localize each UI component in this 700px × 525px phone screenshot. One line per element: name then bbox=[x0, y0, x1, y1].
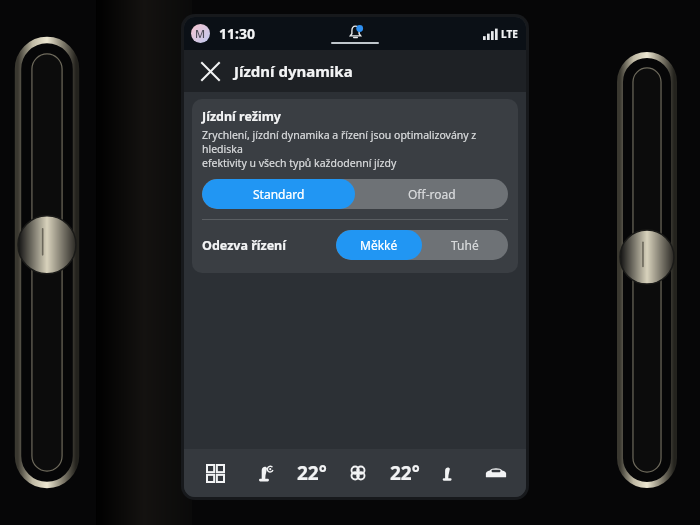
button[interactable]: 22° bbox=[390, 460, 420, 486]
staticText: Tuhé bbox=[451, 237, 479, 253]
staticText: Standard bbox=[253, 186, 305, 202]
staticText: Off-road bbox=[408, 186, 456, 202]
staticText: LTE bbox=[501, 27, 518, 41]
staticText: 11:30 bbox=[219, 24, 255, 43]
staticText: Měkké bbox=[360, 237, 398, 253]
staticText: efektivity u všech typů každodenní jízdy bbox=[202, 156, 397, 170]
staticText: M bbox=[195, 26, 206, 41]
button[interactable]: Off-road bbox=[355, 179, 508, 209]
button[interactable]: Profile bbox=[191, 24, 210, 43]
button[interactable]: Apps bbox=[196, 454, 234, 492]
staticText: Zrychlení, jízdní dynamika a řízení jsou… bbox=[202, 128, 508, 156]
button[interactable]: Notifications bbox=[331, 24, 379, 44]
button[interactable]: Tuhé bbox=[422, 230, 508, 260]
button[interactable]: Měkké bbox=[336, 230, 422, 260]
staticText: Jízdní režimy bbox=[202, 108, 281, 125]
button[interactable]: Driver seat heating bbox=[245, 453, 285, 493]
button[interactable]: 22° bbox=[297, 460, 327, 486]
button[interactable]: Passenger seat bbox=[431, 456, 465, 490]
staticText: Jízdní dynamika bbox=[234, 61, 353, 81]
button[interactable]: Vehicle climate bbox=[477, 454, 515, 492]
button[interactable]: Standard bbox=[202, 179, 355, 209]
button[interactable]: Close bbox=[194, 55, 226, 87]
button[interactable]: Climate fan bbox=[338, 453, 378, 493]
staticText: Odezva řízení bbox=[202, 237, 286, 254]
